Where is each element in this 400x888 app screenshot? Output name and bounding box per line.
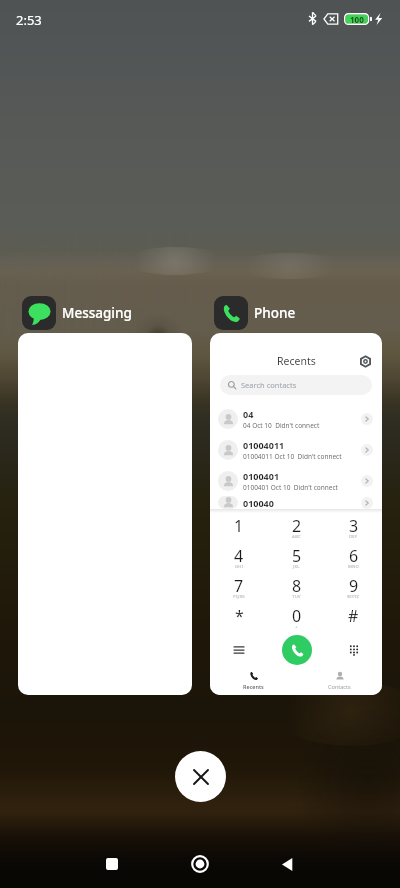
button[interactable]: Search contacts <box>220 375 372 395</box>
staticText: JKL <box>293 564 300 570</box>
staticText: 1 <box>234 515 244 537</box>
staticText: 7 <box>234 575 244 597</box>
staticText: 100 <box>350 14 364 25</box>
staticText: WXYZ <box>347 594 360 600</box>
button[interactable]: 04 <box>210 403 382 434</box>
button[interactable]: 3 <box>325 509 382 539</box>
staticText: 04 Oct 10 Didn't connect <box>243 421 320 430</box>
button[interactable]: 2 <box>268 509 325 539</box>
staticText: PQRS <box>233 594 245 600</box>
button[interactable]: Call <box>282 635 312 665</box>
staticText: 04 <box>243 408 254 420</box>
staticText: Messaging <box>62 304 132 322</box>
button[interactable]: Recents <box>210 671 296 695</box>
button[interactable]: Back <box>265 842 309 886</box>
button[interactable]: 0100401 <box>210 465 382 496</box>
staticText: 3 <box>349 515 359 537</box>
staticText: 6 <box>349 545 359 567</box>
staticText: Contacts <box>328 683 351 690</box>
staticText: Recents <box>243 683 264 690</box>
staticText: 01004011 Oct 10 Didn't connect <box>243 452 342 461</box>
button[interactable]: Recents <box>210 333 382 695</box>
button[interactable]: Menu <box>210 629 268 671</box>
staticText: 5 <box>292 545 302 567</box>
staticText: 0 <box>292 605 302 627</box>
button[interactable]: 5 <box>268 539 325 569</box>
staticText: ABC <box>292 534 301 540</box>
button[interactable]: 7 <box>210 569 268 599</box>
staticText: MNO <box>348 564 360 570</box>
staticText: TUV <box>292 594 301 600</box>
button[interactable]: Close all <box>175 751 226 802</box>
staticText: Phone <box>254 304 296 322</box>
button[interactable]: Settings <box>356 352 374 370</box>
staticText: 8 <box>292 575 302 597</box>
staticText: 010040 <box>243 497 274 509</box>
button[interactable]: * <box>210 599 268 629</box>
staticText: GHI <box>235 564 244 570</box>
button[interactable]: Contacts <box>296 671 382 695</box>
button[interactable]: 9 <box>325 569 382 599</box>
button[interactable] <box>18 333 192 695</box>
button[interactable]: 01004011 <box>210 434 382 465</box>
button[interactable]: 1 <box>210 509 268 539</box>
staticText: Search contacts <box>241 380 297 390</box>
button[interactable]: Recents <box>90 842 134 886</box>
staticText: 4 <box>234 545 244 567</box>
button[interactable]: 0 <box>268 599 325 629</box>
staticText: 2 <box>292 515 302 537</box>
staticText: 0100401 <box>243 470 280 482</box>
button[interactable]: 6 <box>325 539 382 569</box>
staticText: DEF <box>349 534 358 540</box>
staticText: * <box>235 605 244 627</box>
staticText: + <box>295 624 298 630</box>
staticText: 01004011 <box>243 439 285 451</box>
button[interactable]: Keypad <box>325 629 382 671</box>
button[interactable]: Home <box>178 842 222 886</box>
staticText: 0100401 Oct 10 Didn't connect <box>243 483 338 492</box>
staticText: 2:53 <box>16 11 42 29</box>
button[interactable]: # <box>325 599 382 629</box>
button[interactable]: 010040 <box>210 496 382 509</box>
button[interactable]: 4 <box>210 539 268 569</box>
button[interactable]: 8 <box>268 569 325 599</box>
staticText: Recents <box>277 354 316 368</box>
staticText: # <box>348 605 359 627</box>
staticText: 9 <box>349 575 359 597</box>
